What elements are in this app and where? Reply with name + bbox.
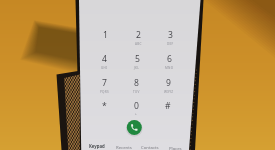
button[interactable]: 0 [134,100,139,112]
staticText: 3 [168,29,173,41]
button[interactable]: Places [169,145,182,150]
staticText: TUV [133,90,140,94]
staticText: ABC [135,42,142,46]
staticText: Contacts [141,144,159,150]
staticText: 5 [135,53,140,65]
button[interactable]: 1 [103,29,108,41]
staticText: WXYZ [164,90,174,94]
button[interactable]: 4 [102,53,107,65]
staticText: PQRS [100,90,109,94]
button[interactable]: 5 [135,53,140,65]
button[interactable]: 7 [102,77,107,89]
staticText: 7 [102,77,107,89]
staticText: Keypad [89,143,105,149]
staticText: DEF [167,42,174,46]
staticText: # [165,100,171,112]
button[interactable]: 8 [134,77,139,89]
staticText: MNO [165,66,174,70]
staticText: GHI [101,66,108,70]
button[interactable]: Keypad [89,143,105,149]
staticText: + [135,112,138,116]
button[interactable]: 2 [136,29,141,41]
button[interactable]: 3 [168,29,173,41]
button[interactable]: 6 [167,53,172,65]
staticText: 6 [167,53,172,65]
staticText: 9 [166,77,171,89]
button[interactable]: 9 [166,77,171,89]
button[interactable]: # [165,100,171,112]
button[interactable]: * [102,100,107,112]
staticText: 1 [103,29,108,41]
button[interactable]: Recents [116,144,132,150]
staticText: Recents [116,144,132,150]
staticText: 8 [134,77,139,89]
staticText: 0 [134,100,139,112]
staticText: JKL [134,66,140,70]
button[interactable]: Contacts [141,144,159,150]
staticText: * [102,100,107,112]
staticText: Places [169,145,182,150]
staticText: 2 [136,29,141,41]
staticText: 4 [102,53,107,65]
